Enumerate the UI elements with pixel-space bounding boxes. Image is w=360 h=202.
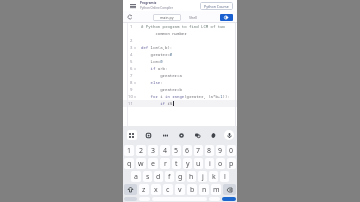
button[interactable]: b (187, 184, 197, 195)
button[interactable]: Voice (221, 126, 237, 144)
button[interactable]: Comma (139, 197, 150, 201)
button[interactable]: Enter (222, 197, 236, 201)
staticText: z (142, 185, 146, 195)
button[interactable]: Emoji (123, 126, 140, 144)
staticText: if i% (141, 101, 173, 106)
button[interactable]: l (220, 171, 229, 182)
button[interactable]: Shift (124, 184, 137, 195)
button[interactable]: x (151, 184, 161, 195)
button[interactable]: q (124, 158, 134, 169)
staticText: Programiz (140, 1, 157, 5)
staticText: l (224, 172, 226, 182)
button[interactable]: g (176, 171, 185, 182)
staticText: Python Course (204, 4, 229, 9)
button[interactable]: main.py (153, 14, 181, 21)
button[interactable]: Symbols (124, 197, 137, 201)
staticText: 5 (174, 146, 179, 156)
staticText: 7 (196, 146, 201, 156)
button[interactable]: Translate (157, 126, 173, 144)
button[interactable]: m (211, 184, 221, 195)
staticText: 10 (128, 94, 133, 100)
staticText: for i in range(greater, (a*b+1)): (141, 94, 230, 99)
staticText: a (134, 172, 138, 182)
staticText: 5 (130, 59, 133, 65)
staticText: else: (141, 80, 163, 85)
staticText: 2 (139, 146, 144, 156)
staticText: common number (141, 31, 187, 36)
button[interactable]: Menu (128, 2, 137, 10)
button[interactable]: z (139, 184, 149, 195)
button[interactable]: h (187, 171, 196, 182)
staticText: w (138, 159, 144, 169)
staticText: m (213, 185, 220, 195)
button[interactable]: Period (209, 197, 220, 201)
staticText: 4 (130, 52, 133, 58)
button[interactable]: k (209, 171, 218, 182)
button[interactable]: f (165, 171, 174, 182)
button[interactable]: Shell (186, 14, 200, 21)
button[interactable]: 8 (205, 145, 214, 156)
button[interactable]: GIF (140, 126, 157, 144)
button[interactable]: Backspace (223, 184, 236, 195)
staticText: h (189, 172, 194, 182)
staticText: 9 (218, 146, 223, 156)
button[interactable]: Theme (205, 126, 221, 144)
staticText: 0 (229, 146, 234, 156)
staticText: main.py (160, 15, 174, 20)
staticText: 6 (185, 146, 190, 156)
staticText: g (178, 172, 183, 182)
button[interactable]: 5 (172, 145, 181, 156)
staticText: greater=b (141, 87, 182, 92)
button[interactable]: Sticker (189, 126, 205, 144)
staticText: Shell (189, 15, 198, 20)
button[interactable]: e (148, 158, 158, 169)
staticText: q (127, 159, 132, 169)
button[interactable]: s (143, 171, 152, 182)
button[interactable]: Reload (126, 13, 134, 21)
staticText: 7 (130, 73, 133, 79)
staticText: 3 (130, 45, 133, 51)
button[interactable]: Run (220, 14, 233, 21)
staticText: 11 (128, 101, 133, 107)
button[interactable]: 1 (124, 145, 134, 156)
staticText: p (229, 159, 234, 169)
button[interactable]: Python Course (200, 2, 233, 10)
staticText: y (186, 159, 190, 169)
button[interactable]: a (131, 171, 141, 182)
staticText: c (166, 185, 170, 195)
button[interactable]: 4 (160, 145, 170, 156)
staticText: 6 (130, 66, 133, 72)
button[interactable]: v (175, 184, 185, 195)
button[interactable]: w (136, 158, 146, 169)
staticText: e (151, 159, 155, 169)
button[interactable]: 0 (227, 145, 236, 156)
button[interactable]: p (227, 158, 236, 169)
button[interactable]: n (199, 184, 209, 195)
button[interactable]: 7 (194, 145, 203, 156)
staticText: greater=a (141, 73, 182, 78)
button[interactable]: c (163, 184, 173, 195)
staticText: 8 (207, 146, 212, 156)
button[interactable]: r (160, 158, 170, 169)
button[interactable]: y (183, 158, 192, 169)
button[interactable]: u (194, 158, 203, 169)
staticText: 1 (130, 24, 133, 30)
button[interactable]: t (172, 158, 181, 169)
button[interactable]: 3 (148, 145, 158, 156)
staticText: 9 (130, 87, 133, 93)
button[interactable]: Settings (173, 126, 189, 144)
staticText: greater=0 (141, 52, 173, 57)
staticText: i (209, 159, 211, 169)
staticText: t (175, 159, 178, 169)
staticText: 8 (130, 80, 133, 86)
button[interactable]: 9 (216, 145, 225, 156)
button[interactable]: j (198, 171, 207, 182)
button[interactable]: i (205, 158, 214, 169)
button[interactable]: 2 (136, 145, 146, 156)
staticText: Python Online Compiler (140, 6, 173, 10)
staticText: 3 (151, 146, 156, 156)
button[interactable]: 6 (183, 145, 192, 156)
button[interactable]: d (154, 171, 163, 182)
button[interactable]: o (216, 158, 225, 169)
